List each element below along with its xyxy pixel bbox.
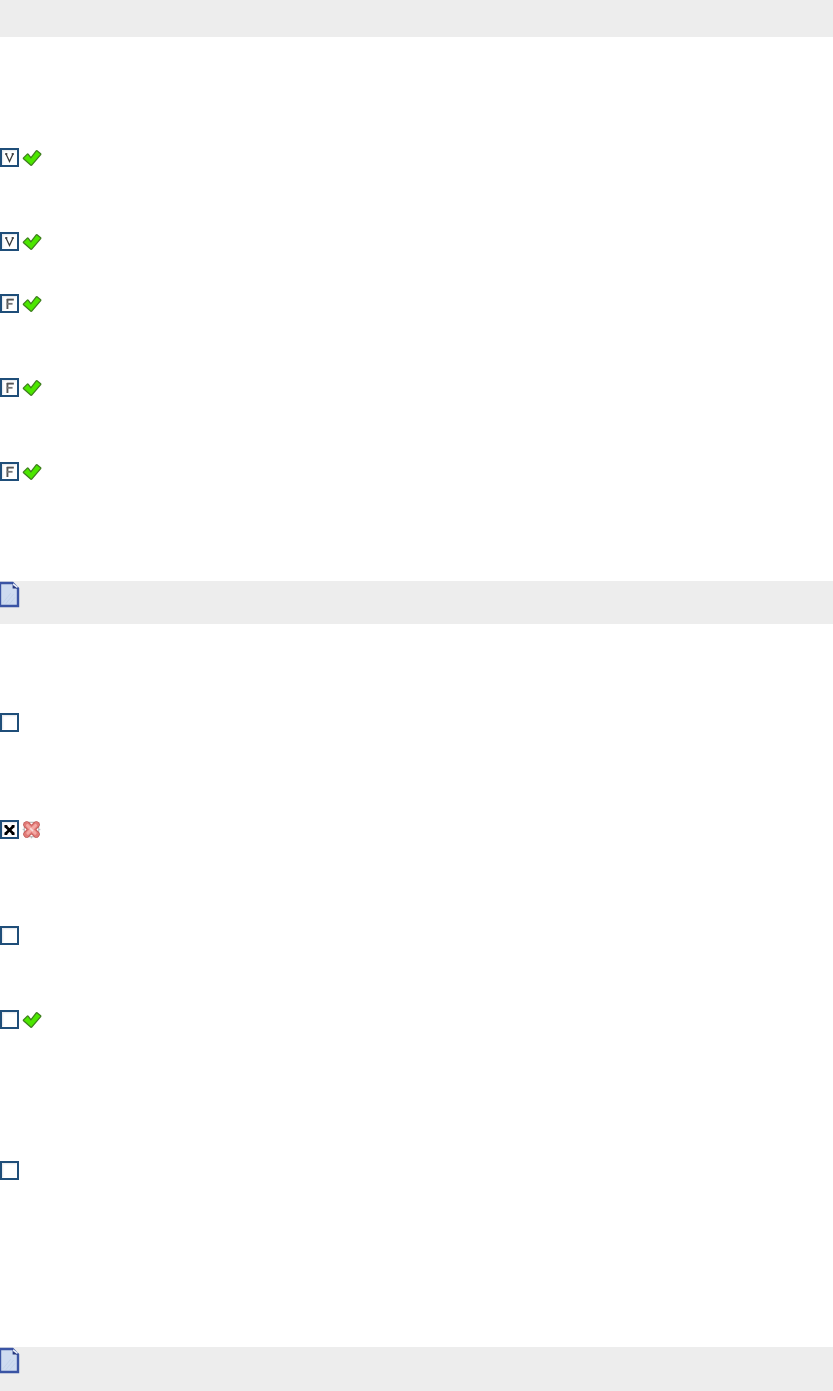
button[interactable]: Answer F correct: [0, 294, 41, 313]
other: Correct: [23, 295, 41, 312]
button[interactable]: Empty answer: [0, 1010, 41, 1029]
other: Empty answer: [0, 1010, 19, 1029]
other: Correct: [23, 1011, 41, 1028]
other: Document: [0, 1349, 18, 1372]
other: Answer F correct: [0, 378, 19, 397]
other: Correct: [23, 379, 41, 396]
other: Answer V correct: [0, 148, 19, 167]
other: Answer F correct: [0, 294, 19, 313]
other: Answer F correct: [0, 462, 19, 481]
other: Empty answer: [0, 713, 19, 732]
other: Document: [0, 583, 18, 606]
button[interactable]: Answer F correct: [0, 378, 41, 397]
button[interactable]: Answer F correct: [0, 462, 41, 481]
other: Empty answer: [0, 1161, 19, 1180]
button[interactable]: Empty answer: [0, 1161, 23, 1180]
other: Incorrect: [23, 821, 40, 838]
other: Correct: [23, 149, 41, 166]
other: Empty answer: [0, 926, 19, 945]
button[interactable]: Answer V correct: [0, 148, 41, 167]
other: Correct: [23, 233, 41, 250]
button[interactable]: Answer V correct: [0, 232, 41, 251]
other: Answer V correct: [0, 232, 19, 251]
button[interactable]: Empty answer: [0, 713, 23, 732]
button[interactable]: Answer X: [0, 820, 40, 839]
other: Correct: [23, 463, 41, 480]
button[interactable]: Document: [0, 581, 833, 624]
button[interactable]: Document: [0, 1347, 833, 1391]
button[interactable]: Empty answer: [0, 926, 23, 945]
other: Answer X: [0, 820, 19, 839]
